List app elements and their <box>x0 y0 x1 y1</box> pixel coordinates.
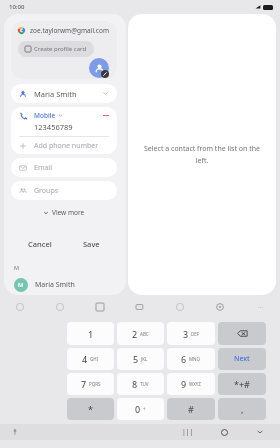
staticText: GHI <box>90 356 99 362</box>
button[interactable]: View more <box>37 206 91 219</box>
button[interactable]: 1 <box>67 322 114 345</box>
staticText: 0 <box>135 403 141 415</box>
staticText: Add phone number <box>34 141 99 151</box>
staticText: MNO <box>189 356 201 362</box>
button[interactable]: 7 <box>67 373 114 395</box>
staticText: 3 <box>183 328 189 340</box>
staticText: , <box>241 403 244 415</box>
button[interactable]: Backspace <box>218 322 266 345</box>
button[interactable]: Nav item 4 <box>160 297 200 316</box>
button[interactable]: Home <box>216 424 232 440</box>
button[interactable]: Email <box>11 158 117 177</box>
button[interactable]: M <box>4 274 126 295</box>
staticText: 8 <box>132 378 138 390</box>
staticText: 7 <box>81 378 87 390</box>
button[interactable]: 5 <box>117 348 164 370</box>
button[interactable]: 3 <box>167 322 215 345</box>
staticText: M <box>14 264 19 271</box>
button[interactable]: 8 <box>117 373 164 395</box>
button[interactable]: Recents <box>180 424 196 440</box>
staticText: ··· <box>258 303 263 311</box>
staticText: Save <box>83 239 100 249</box>
staticText: DEF <box>191 331 200 337</box>
staticText: # <box>188 403 194 415</box>
staticText: View more <box>52 208 85 217</box>
staticText: 4 <box>82 353 88 365</box>
button[interactable]: Maria Smith <box>11 84 117 103</box>
staticText: Maria Smith <box>34 89 102 99</box>
staticText: Create profile card <box>34 45 87 53</box>
button[interactable]: Create profile card <box>18 41 94 57</box>
button[interactable]: 2 <box>117 322 164 345</box>
staticText: 10:00 <box>9 3 25 11</box>
staticText: * <box>88 403 93 415</box>
staticText: ||| <box>182 427 194 437</box>
staticText: TUV <box>140 381 149 387</box>
button[interactable]: 9 <box>167 373 215 395</box>
button[interactable]: Mobile <box>11 107 117 136</box>
button[interactable]: 0 <box>117 398 164 420</box>
button[interactable]: Hide keyboard <box>252 424 268 440</box>
staticText: WXYZ <box>189 381 201 387</box>
staticText: 6 <box>181 353 187 365</box>
staticText: Cancel <box>28 239 52 249</box>
button[interactable]: zoe.taylorwm@gmail.com <box>11 21 117 39</box>
button[interactable]: *+# <box>218 373 266 395</box>
staticText: Email <box>34 163 52 173</box>
staticText: Select a contact from the list on the le… <box>144 144 260 165</box>
staticText: 123456789 <box>34 122 73 132</box>
staticText: Next <box>234 354 250 364</box>
staticText: 9 <box>181 378 187 390</box>
button[interactable]: , <box>218 398 266 420</box>
staticText: 5 <box>133 353 139 365</box>
button[interactable]: * <box>67 398 114 420</box>
button[interactable]: Nav item 5 <box>200 297 240 316</box>
button[interactable]: Groups <box>11 181 117 200</box>
staticText: zoe.taylorwm@gmail.com <box>30 26 109 35</box>
button[interactable]: Edit photo <box>89 58 109 78</box>
button[interactable]: Nav item 2 <box>80 297 120 316</box>
button[interactable]: Cancel <box>20 236 60 252</box>
staticText: Maria Smith <box>35 280 75 290</box>
button[interactable]: Nav item 0 <box>0 297 40 316</box>
button[interactable]: Nav item 1 <box>40 297 80 316</box>
button[interactable]: Voice input <box>10 427 20 437</box>
staticText: 1 <box>88 328 94 340</box>
button[interactable]: Next <box>218 348 266 370</box>
button[interactable]: Add phone number <box>11 137 117 154</box>
button[interactable]: 6 <box>167 348 215 370</box>
staticText: Groups <box>34 186 59 196</box>
staticText: JKL <box>141 356 148 362</box>
staticText: *+# <box>234 378 250 390</box>
button[interactable]: Nav item 3 <box>120 297 160 316</box>
staticText: M <box>18 281 24 289</box>
button[interactable]: Save <box>75 236 108 252</box>
staticText: + <box>143 406 146 412</box>
staticText: PQRS <box>89 381 101 387</box>
button[interactable]: # <box>167 398 215 420</box>
staticText: Mobile <box>34 111 56 120</box>
staticText: ABC <box>140 331 149 337</box>
staticText: 2 <box>132 328 138 340</box>
button[interactable]: 4 <box>67 348 114 370</box>
